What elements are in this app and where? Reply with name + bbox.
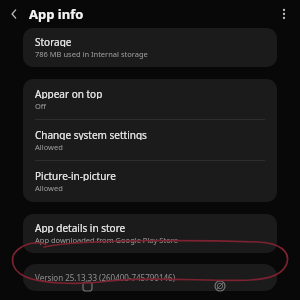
staticText: App downloaded from Google Play Store xyxy=(35,235,178,245)
staticText: 786 MB used in Internal storage xyxy=(35,49,148,59)
button[interactable]: Picture-in-picture xyxy=(23,161,277,202)
button[interactable]: Gesture navigation xyxy=(209,275,231,297)
staticText: App details in store xyxy=(35,221,126,233)
staticText: Version 25.13.33 (260400-745790146) xyxy=(35,272,176,283)
staticText: Allowed xyxy=(35,142,63,152)
button[interactable]: App details in store xyxy=(23,214,277,253)
button[interactable]: Appear on top xyxy=(23,79,277,119)
button[interactable]: Change system settings xyxy=(23,120,277,160)
button[interactable]: Home xyxy=(76,275,98,297)
button[interactable]: Version 25.13.33 (260400-745790146) xyxy=(23,264,277,291)
staticText: Storage xyxy=(35,35,72,47)
staticText: Allowed xyxy=(35,183,63,193)
button[interactable]: Back xyxy=(3,3,25,25)
staticText: Off xyxy=(35,101,47,111)
button[interactable]: Storage xyxy=(23,28,277,67)
staticText: Change system settings xyxy=(35,128,147,140)
button[interactable]: More options xyxy=(273,3,295,25)
staticText: Picture-in-picture xyxy=(35,169,116,181)
staticText: App info xyxy=(29,5,84,23)
staticText: Appear on top xyxy=(35,87,103,99)
